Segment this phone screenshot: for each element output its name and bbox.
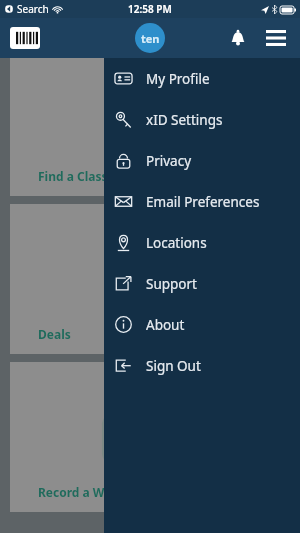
button[interactable]: Email Preferences bbox=[104, 181, 300, 222]
staticText: About bbox=[146, 316, 185, 334]
staticText: Privacy bbox=[146, 152, 192, 170]
staticText: Find a Class bbox=[38, 168, 108, 184]
button[interactable]: Notifications bbox=[224, 24, 252, 52]
staticText: Search bbox=[17, 2, 49, 16]
staticText: Support bbox=[146, 275, 197, 293]
button[interactable]: Privacy bbox=[104, 140, 300, 181]
button[interactable]: Menu bbox=[262, 24, 290, 52]
staticText: Sign Out bbox=[146, 357, 201, 375]
button[interactable]: Find a Class bbox=[10, 58, 290, 196]
staticText: My Profile bbox=[146, 70, 210, 88]
staticText: 12:58 PM bbox=[128, 2, 172, 16]
staticText: Email Preferences bbox=[146, 193, 260, 211]
staticText: Record a Workout bbox=[38, 484, 146, 500]
button[interactable]: Sign Out bbox=[104, 345, 300, 386]
button[interactable]: xID Settings bbox=[104, 99, 300, 140]
staticText: Deals bbox=[38, 326, 71, 342]
button[interactable]: Support bbox=[104, 263, 300, 304]
button[interactable]: Locations bbox=[104, 222, 300, 263]
staticText: ten bbox=[141, 31, 160, 46]
button[interactable]: About bbox=[104, 304, 300, 345]
button[interactable]: My Profile bbox=[104, 58, 300, 99]
button[interactable]: Record a Workout bbox=[10, 362, 290, 512]
button[interactable]: ten logo bbox=[135, 23, 165, 53]
button[interactable]: Barcode bbox=[10, 27, 40, 49]
button[interactable]: Deals bbox=[10, 204, 290, 354]
staticText: xID Settings bbox=[146, 111, 223, 129]
staticText: Locations bbox=[146, 234, 207, 252]
